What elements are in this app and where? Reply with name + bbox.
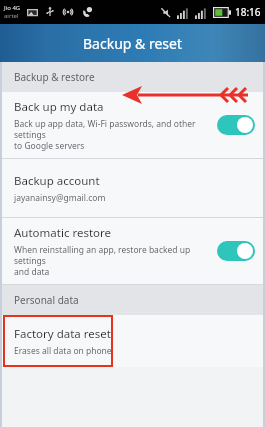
staticText: airtel [4, 12, 19, 20]
staticText: When reinstalling an app, restore backed… [14, 244, 209, 277]
button[interactable]: Factory data reset [3, 315, 113, 367]
staticText: Back up app data, Wi-Fi passwords, and o… [14, 118, 209, 151]
button[interactable]: Toggle Automatic restore [217, 241, 255, 261]
button[interactable]: Back up my data [0, 92, 265, 158]
staticText: Backup & restore [14, 70, 95, 84]
staticText: Personal data [14, 293, 79, 307]
button[interactable]: Automatic restore [0, 218, 265, 284]
staticText: Erases all data on phone [14, 345, 112, 357]
staticText: Factory data reset [14, 326, 111, 342]
staticText: Backup account [14, 173, 100, 189]
button[interactable]: Backup account [0, 159, 265, 217]
staticText: Jio 4G [4, 4, 21, 12]
button[interactable]: Toggle Back up my data [217, 115, 255, 135]
staticText: 18:16 [235, 5, 261, 19]
staticText: Backup & reset [83, 34, 182, 53]
staticText: Automatic restore [14, 225, 112, 241]
staticText: Back up my data [14, 99, 104, 115]
staticText: jayanainsy@gmail.com [14, 192, 106, 204]
